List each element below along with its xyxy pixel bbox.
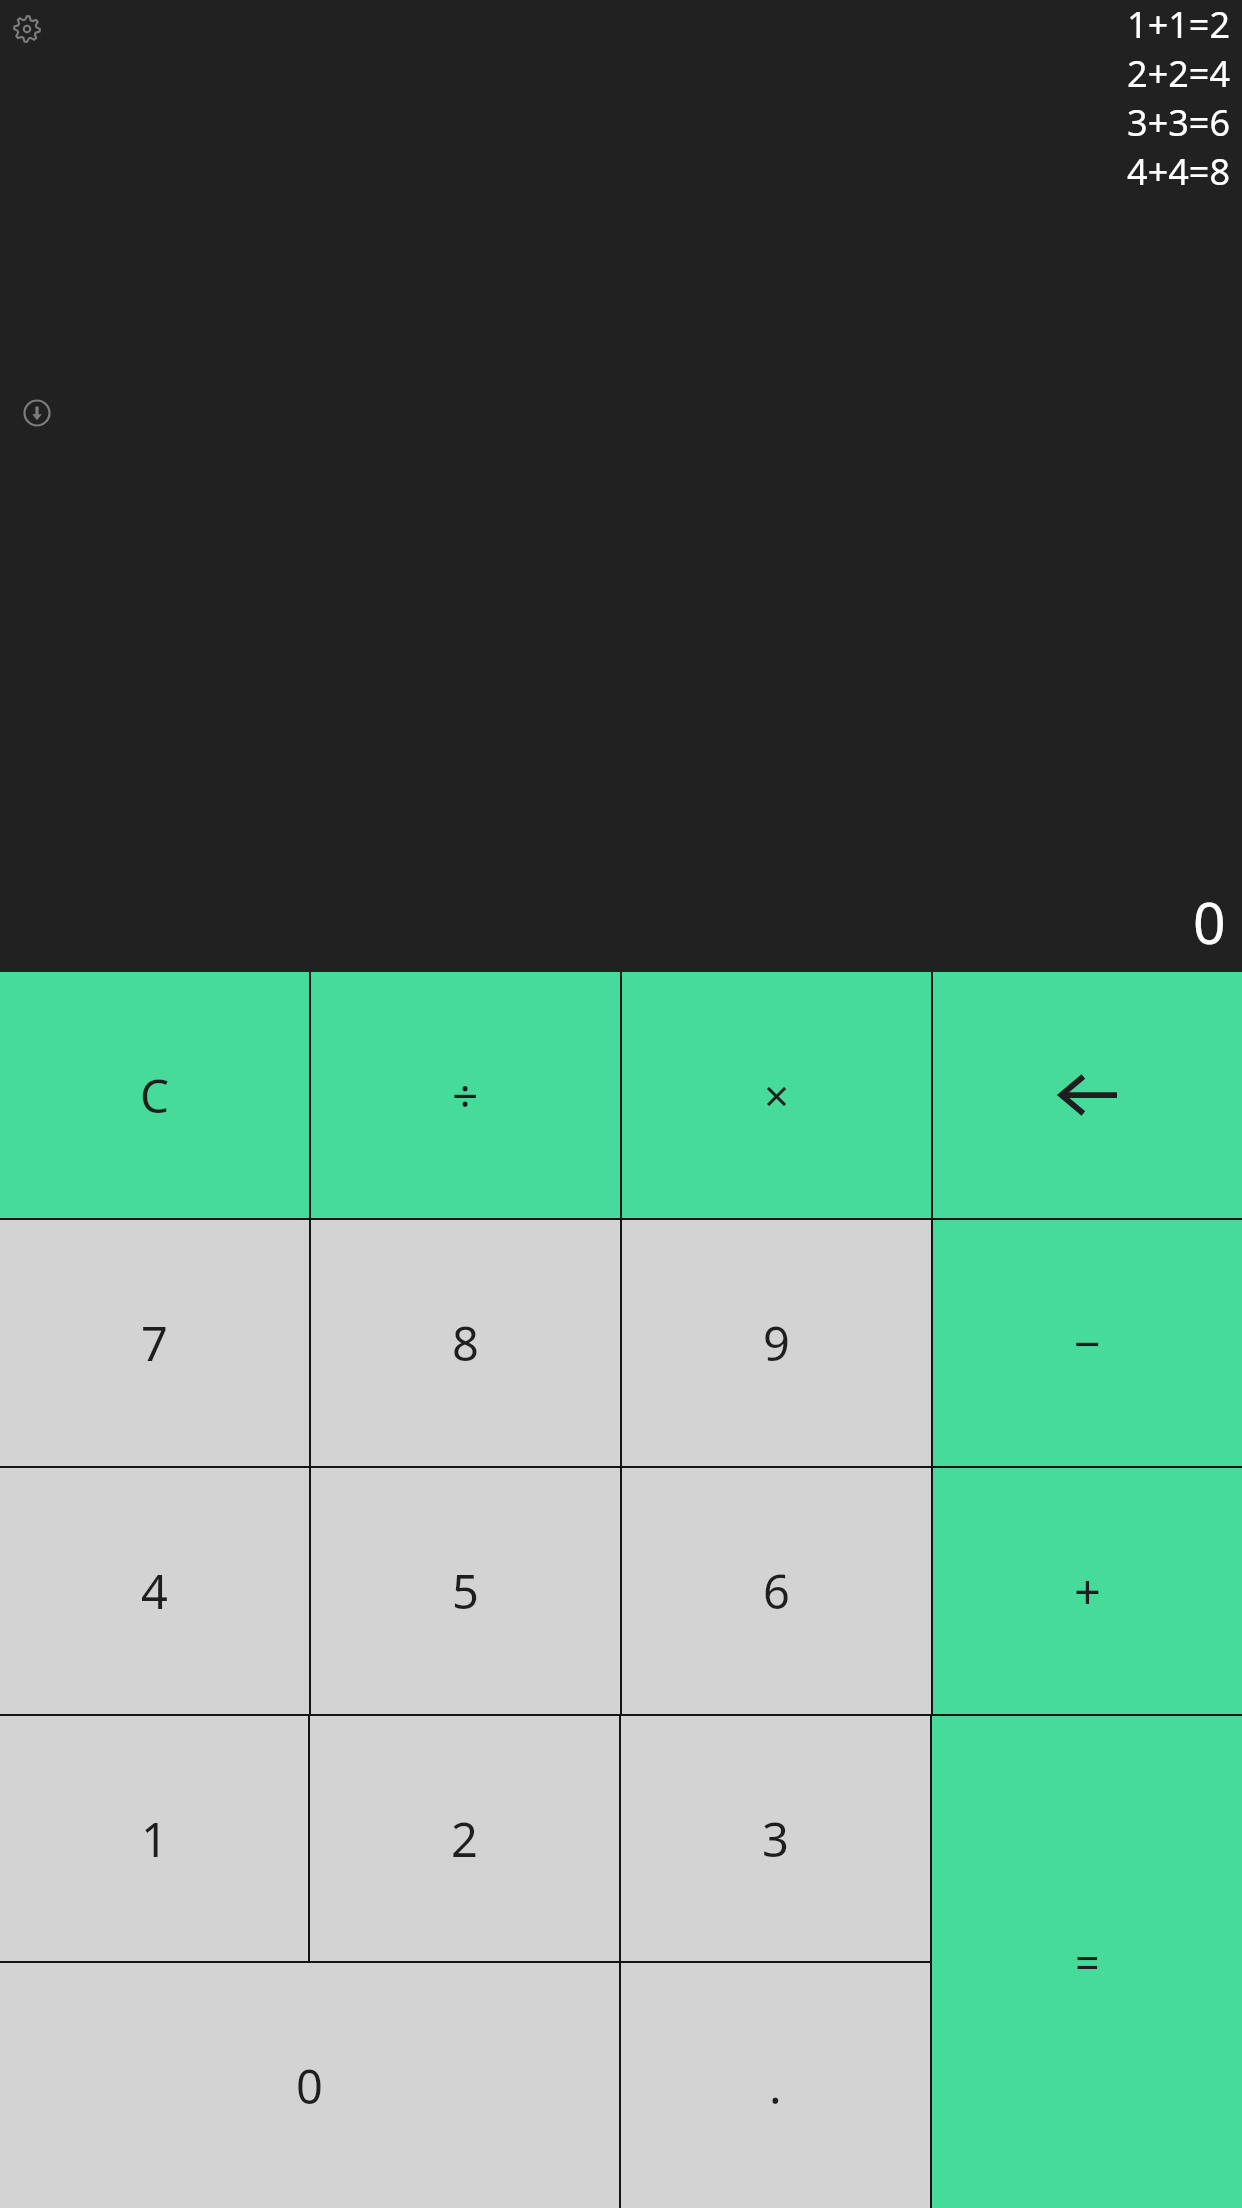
button[interactable]: 4 xyxy=(0,1468,309,1714)
staticText: = xyxy=(1075,1933,1100,1992)
button[interactable]: 8 xyxy=(311,1220,620,1466)
staticText: × xyxy=(764,1065,790,1125)
staticText: 3 xyxy=(762,1807,789,1871)
button[interactable]: 5 xyxy=(311,1468,620,1714)
button[interactable]: Backspace xyxy=(933,972,1242,1218)
staticText: 2+2=4 xyxy=(1127,49,1230,98)
staticText: 6 xyxy=(763,1559,790,1623)
staticText: 9 xyxy=(763,1311,790,1375)
staticText: − xyxy=(1074,1311,1101,1375)
button[interactable]: 1 xyxy=(0,1716,308,1961)
button[interactable]: Settings xyxy=(8,10,45,47)
staticText: 7 xyxy=(141,1311,168,1375)
button[interactable]: Expand history xyxy=(23,399,51,427)
button[interactable]: − xyxy=(933,1220,1242,1466)
staticText: 4+4=8 xyxy=(1127,147,1230,196)
staticText: ÷ xyxy=(452,1064,479,1127)
button[interactable]: 2 xyxy=(310,1716,619,1961)
button[interactable]: C xyxy=(0,972,309,1218)
staticText: 8 xyxy=(452,1311,479,1375)
staticText: 4 xyxy=(141,1559,168,1623)
button[interactable]: 3 xyxy=(621,1716,930,1961)
button[interactable]: . xyxy=(621,1963,930,2208)
staticText: 2 xyxy=(451,1807,478,1871)
staticText: C xyxy=(140,1064,170,1127)
staticText: 0 xyxy=(296,2054,323,2118)
staticText: + xyxy=(1074,1559,1101,1623)
button[interactable]: 6 xyxy=(622,1468,931,1714)
staticText: . xyxy=(769,2054,782,2118)
staticText: 0 xyxy=(1193,883,1226,961)
button[interactable]: 7 xyxy=(0,1220,309,1466)
staticText: 3+3=6 xyxy=(1127,98,1230,147)
button[interactable]: ÷ xyxy=(311,972,620,1218)
staticText: 1+1=2 xyxy=(1127,0,1230,49)
button[interactable]: × xyxy=(622,972,931,1218)
button[interactable]: + xyxy=(933,1468,1242,1714)
staticText: 1 xyxy=(141,1807,168,1871)
button[interactable]: 0 xyxy=(0,1963,619,2208)
button[interactable]: = xyxy=(932,1716,1242,2208)
button[interactable]: 9 xyxy=(622,1220,931,1466)
staticText: 5 xyxy=(452,1559,479,1623)
